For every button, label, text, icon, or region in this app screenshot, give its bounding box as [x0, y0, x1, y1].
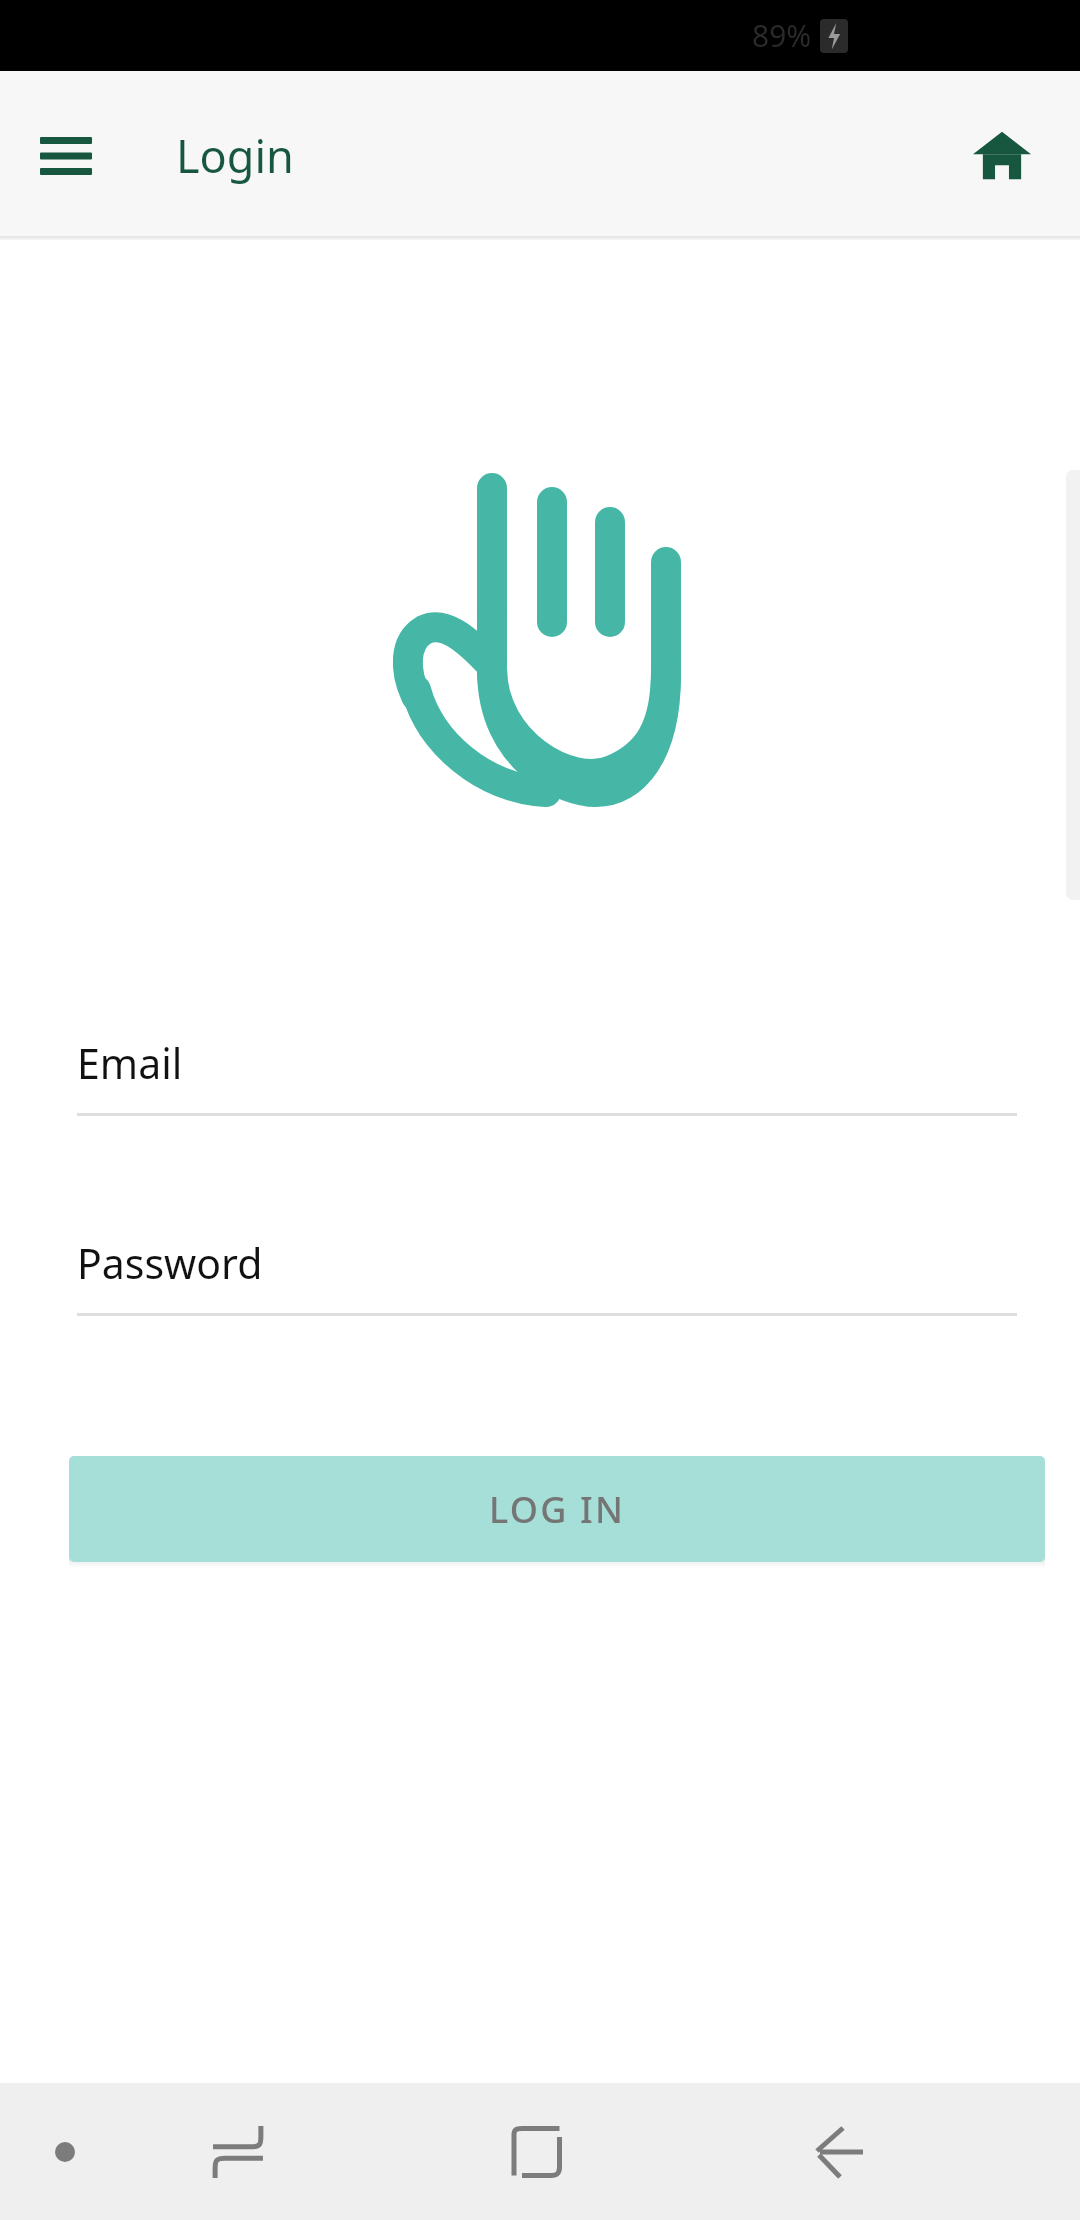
- button[interactable]: Switch apps: [190, 2104, 286, 2200]
- button[interactable]: Menu indicator: [18, 2105, 112, 2199]
- button[interactable]: Email: [77, 1035, 1017, 1116]
- button[interactable]: Open navigation menu: [20, 110, 112, 202]
- button[interactable]: Home: [488, 2104, 584, 2200]
- staticText: Login: [176, 125, 294, 186]
- staticText: 89%: [752, 15, 812, 56]
- button[interactable]: LOG IN: [69, 1456, 1045, 1562]
- button[interactable]: Home: [954, 108, 1050, 204]
- button[interactable]: Back: [791, 2104, 887, 2200]
- staticText: Email: [77, 1035, 183, 1091]
- button[interactable]: Password: [77, 1235, 1017, 1316]
- staticText: LOG IN: [489, 1485, 626, 1534]
- staticText: Password: [77, 1235, 263, 1291]
